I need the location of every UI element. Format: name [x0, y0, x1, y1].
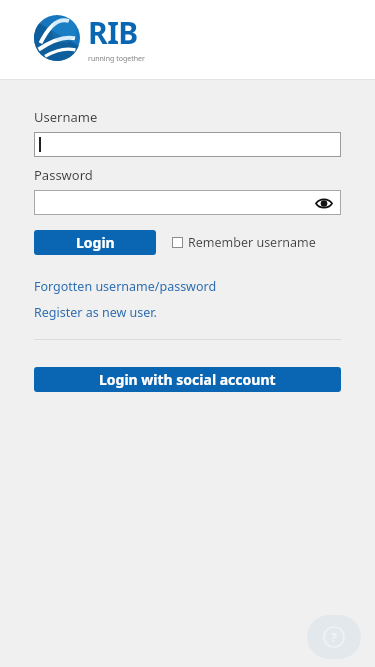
button[interactable]: Forgotten username/password	[34, 278, 217, 295]
button[interactable]: Show password	[34, 190, 341, 215]
staticText: running together	[88, 54, 145, 64]
button[interactable]: Register as new user.	[34, 304, 157, 321]
button[interactable]: Remember username	[172, 234, 316, 251]
button[interactable]: Login with social account	[34, 367, 341, 392]
staticText: RIB	[88, 12, 138, 53]
button[interactable]: Username input	[34, 132, 341, 157]
staticText: Login with social account	[99, 370, 276, 389]
staticText: Remember username	[188, 234, 316, 251]
staticText: Password	[34, 166, 93, 184]
staticText: Username	[34, 108, 98, 126]
staticText: Login	[76, 233, 115, 252]
button[interactable]: Help	[307, 615, 361, 659]
button[interactable]: Show password	[315, 194, 333, 212]
button[interactable]: Login	[34, 230, 156, 255]
staticText: ?	[331, 629, 337, 645]
